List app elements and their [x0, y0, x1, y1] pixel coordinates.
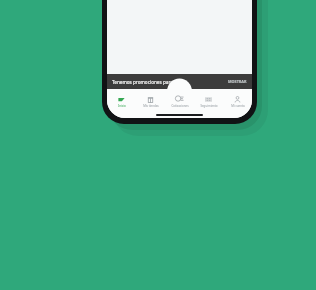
- staticText: Inicio: [118, 104, 126, 108]
- button[interactable]: Tenemos promociones para ti: [107, 74, 252, 89]
- button[interactable]: Mi cuenta: [223, 89, 252, 112]
- staticText: Tenemos promociones para ti: [112, 79, 178, 85]
- staticText: Cotizaciones: [171, 104, 189, 108]
- button[interactable]: Inicio: [107, 89, 136, 112]
- button[interactable]: Cotizaciones: [165, 89, 194, 112]
- button[interactable]: Seguimiento: [194, 89, 223, 112]
- staticText: Seguimiento: [200, 104, 218, 108]
- staticText: MOSTRAR: [228, 79, 247, 84]
- staticText: Mis tiendas: [143, 104, 159, 108]
- staticText: Mi cuenta: [231, 104, 245, 108]
- button[interactable]: Mis tiendas: [136, 89, 165, 112]
